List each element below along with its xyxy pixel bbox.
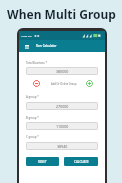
button[interactable]: Open navigation menu bbox=[22, 42, 31, 51]
staticText: 38940 bbox=[57, 144, 68, 149]
staticText: When Multi Group bbox=[7, 6, 116, 22]
button[interactable]: 38940 bbox=[26, 142, 98, 150]
staticText: 380000 bbox=[56, 69, 69, 74]
staticText: A group * bbox=[26, 95, 39, 99]
staticText: Rcm Calculator bbox=[36, 44, 57, 48]
button[interactable]: 110000 bbox=[26, 122, 98, 130]
button[interactable]: Delete group bbox=[33, 80, 40, 87]
staticText: Total Business * bbox=[26, 61, 47, 65]
staticText: C group * bbox=[26, 135, 39, 139]
staticText: 270000 bbox=[56, 104, 69, 109]
staticText: 10:00 PM bbox=[21, 34, 32, 37]
button[interactable]: 380000 bbox=[26, 67, 98, 75]
button[interactable]: CALCUATE bbox=[64, 157, 98, 166]
button[interactable]: Add group bbox=[86, 80, 93, 87]
staticText: Add Or Delete Group bbox=[51, 82, 77, 86]
button[interactable]: RESET bbox=[26, 157, 59, 166]
staticText: 110000 bbox=[56, 124, 69, 129]
staticText: CALCUATE bbox=[74, 160, 89, 164]
staticText: RESET bbox=[38, 160, 47, 164]
staticText: B group * bbox=[26, 116, 39, 120]
button[interactable]: 270000 bbox=[26, 102, 98, 110]
